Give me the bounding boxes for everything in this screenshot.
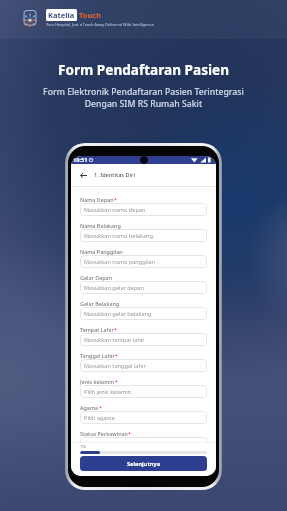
button[interactable]: Pilih status perkawinan <box>80 437 207 450</box>
staticText: Selanjutnya <box>127 460 160 468</box>
button[interactable]: Pilih jenis kelamin <box>80 385 207 398</box>
staticText: Gelar Depan <box>80 274 113 281</box>
staticText: Pilih status perkawinan <box>84 440 145 448</box>
button[interactable]: Masukkan nama depan <box>80 203 207 216</box>
staticText: Form Pendaftaran Pasien <box>0 60 287 79</box>
staticText: Tanggal Lahir <box>80 352 115 359</box>
staticText: Masukkan gelar depan <box>84 284 144 292</box>
staticText: * <box>114 196 117 203</box>
staticText: Jenis kelamin <box>80 378 115 385</box>
button[interactable]: Masukkan gelar depan <box>80 281 207 294</box>
staticText: Masukkan nama belakang <box>84 232 153 240</box>
staticText: Nama Panggilan <box>80 248 123 255</box>
button[interactable]: Masukkan tanggal lahir <box>80 359 207 372</box>
staticText: Tempat Lahir <box>80 326 114 333</box>
button[interactable]: Masukkan nama belakang <box>80 229 207 242</box>
staticText: Gelar Belakang <box>80 300 120 307</box>
staticText: Pilih jenis kelamin <box>84 388 132 396</box>
staticText: 10:51 <box>73 156 88 164</box>
staticText: * <box>128 430 131 437</box>
button[interactable]: Masukkan nama panggilan <box>80 255 207 268</box>
staticText: * <box>115 378 118 385</box>
staticText: Form Elektronik Pendaftaran Pasien Terin… <box>0 86 287 98</box>
staticText: Masukkan tempat lahir <box>84 336 145 344</box>
staticText: 1% <box>80 444 86 450</box>
staticText: Masukkan tanggal lahir <box>84 362 146 370</box>
staticText: Nama Belakang <box>80 222 121 229</box>
staticText: Status Perkawinan <box>80 430 128 437</box>
button[interactable]: Pilih agama <box>80 411 207 424</box>
staticText: Pilih agama <box>84 414 115 422</box>
staticText: Masukkan nama panggilan <box>84 258 156 266</box>
staticText: 1. Identitas Diri <box>94 171 135 179</box>
staticText: Masukkan gelar belakang <box>84 310 152 318</box>
staticText: Dengan SIM RS Rumah Sakit <box>0 98 287 110</box>
staticText: * <box>99 404 102 411</box>
staticText: Agama <box>80 404 99 411</box>
staticText: Touch <box>79 10 102 20</box>
staticText: Your Hospital, Just a Touch Away Deliver… <box>46 22 154 27</box>
staticText: * <box>115 352 118 359</box>
staticText: Masukkan nama depan <box>84 206 146 214</box>
button[interactable]: Selanjutnya <box>80 456 207 471</box>
staticText: * <box>114 326 117 333</box>
button[interactable]: Masukkan tempat lahir <box>80 333 207 346</box>
staticText: Nama Depan <box>80 196 114 203</box>
button[interactable]: Back <box>78 170 89 181</box>
staticText: Katelia <box>48 10 75 20</box>
button[interactable]: Masukkan gelar belakang <box>80 307 207 320</box>
